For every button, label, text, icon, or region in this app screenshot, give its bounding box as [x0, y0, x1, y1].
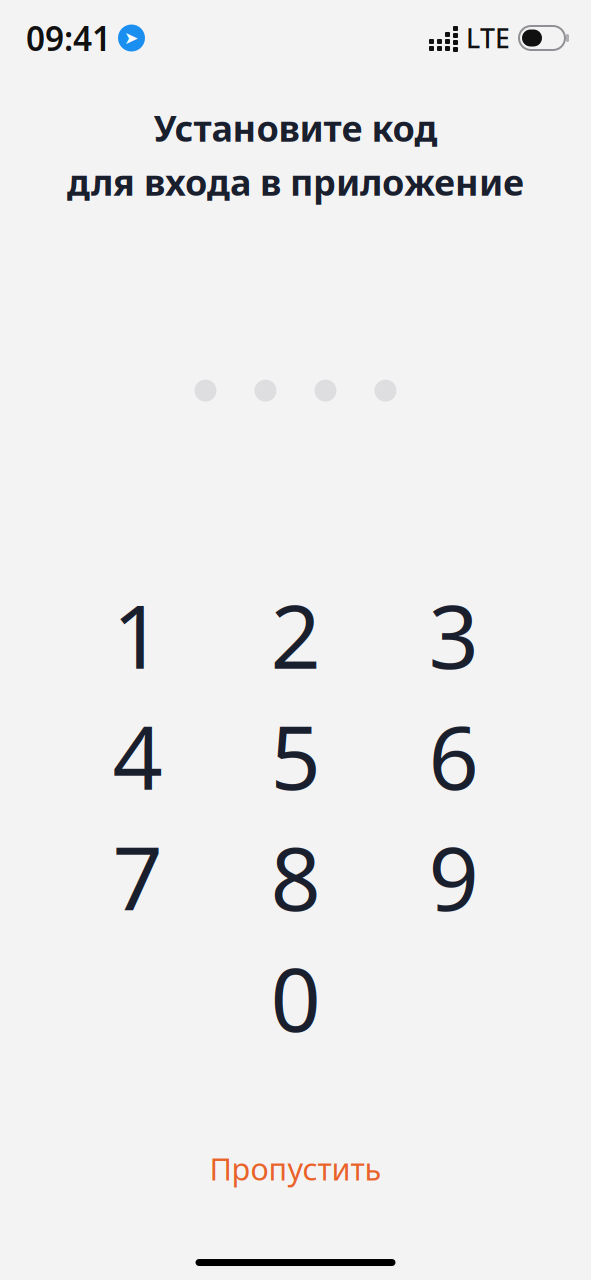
button[interactable]: 4: [58, 723, 216, 789]
staticText: 0: [270, 939, 320, 1056]
staticText: Установите код: [153, 104, 437, 152]
button[interactable]: 7: [58, 844, 216, 910]
staticText: 9: [428, 818, 478, 935]
staticText: ➤: [124, 28, 139, 48]
button[interactable]: 8: [216, 844, 374, 910]
staticText: 5: [270, 697, 320, 814]
button[interactable]: 1: [58, 602, 216, 668]
staticText: LTE: [466, 20, 510, 56]
staticText: 8: [270, 818, 320, 935]
staticText: для входа в приложение: [67, 158, 524, 206]
staticText: Пропустить: [209, 1148, 381, 1189]
button[interactable]: 0: [216, 965, 374, 1031]
button[interactable]: 6: [374, 723, 532, 789]
button[interactable]: 2: [216, 602, 374, 668]
button[interactable]: 3: [374, 602, 532, 668]
staticText: 1: [112, 576, 162, 693]
staticText: 2: [270, 576, 320, 693]
button[interactable]: Пропустить: [183, 1138, 407, 1199]
staticText: 3: [428, 576, 478, 693]
staticText: 6: [428, 697, 478, 814]
staticText: 7: [112, 818, 162, 935]
button[interactable]: 9: [374, 844, 532, 910]
button[interactable]: 5: [216, 723, 374, 789]
staticText: 4: [112, 697, 162, 814]
staticText: 09:41: [26, 16, 111, 60]
